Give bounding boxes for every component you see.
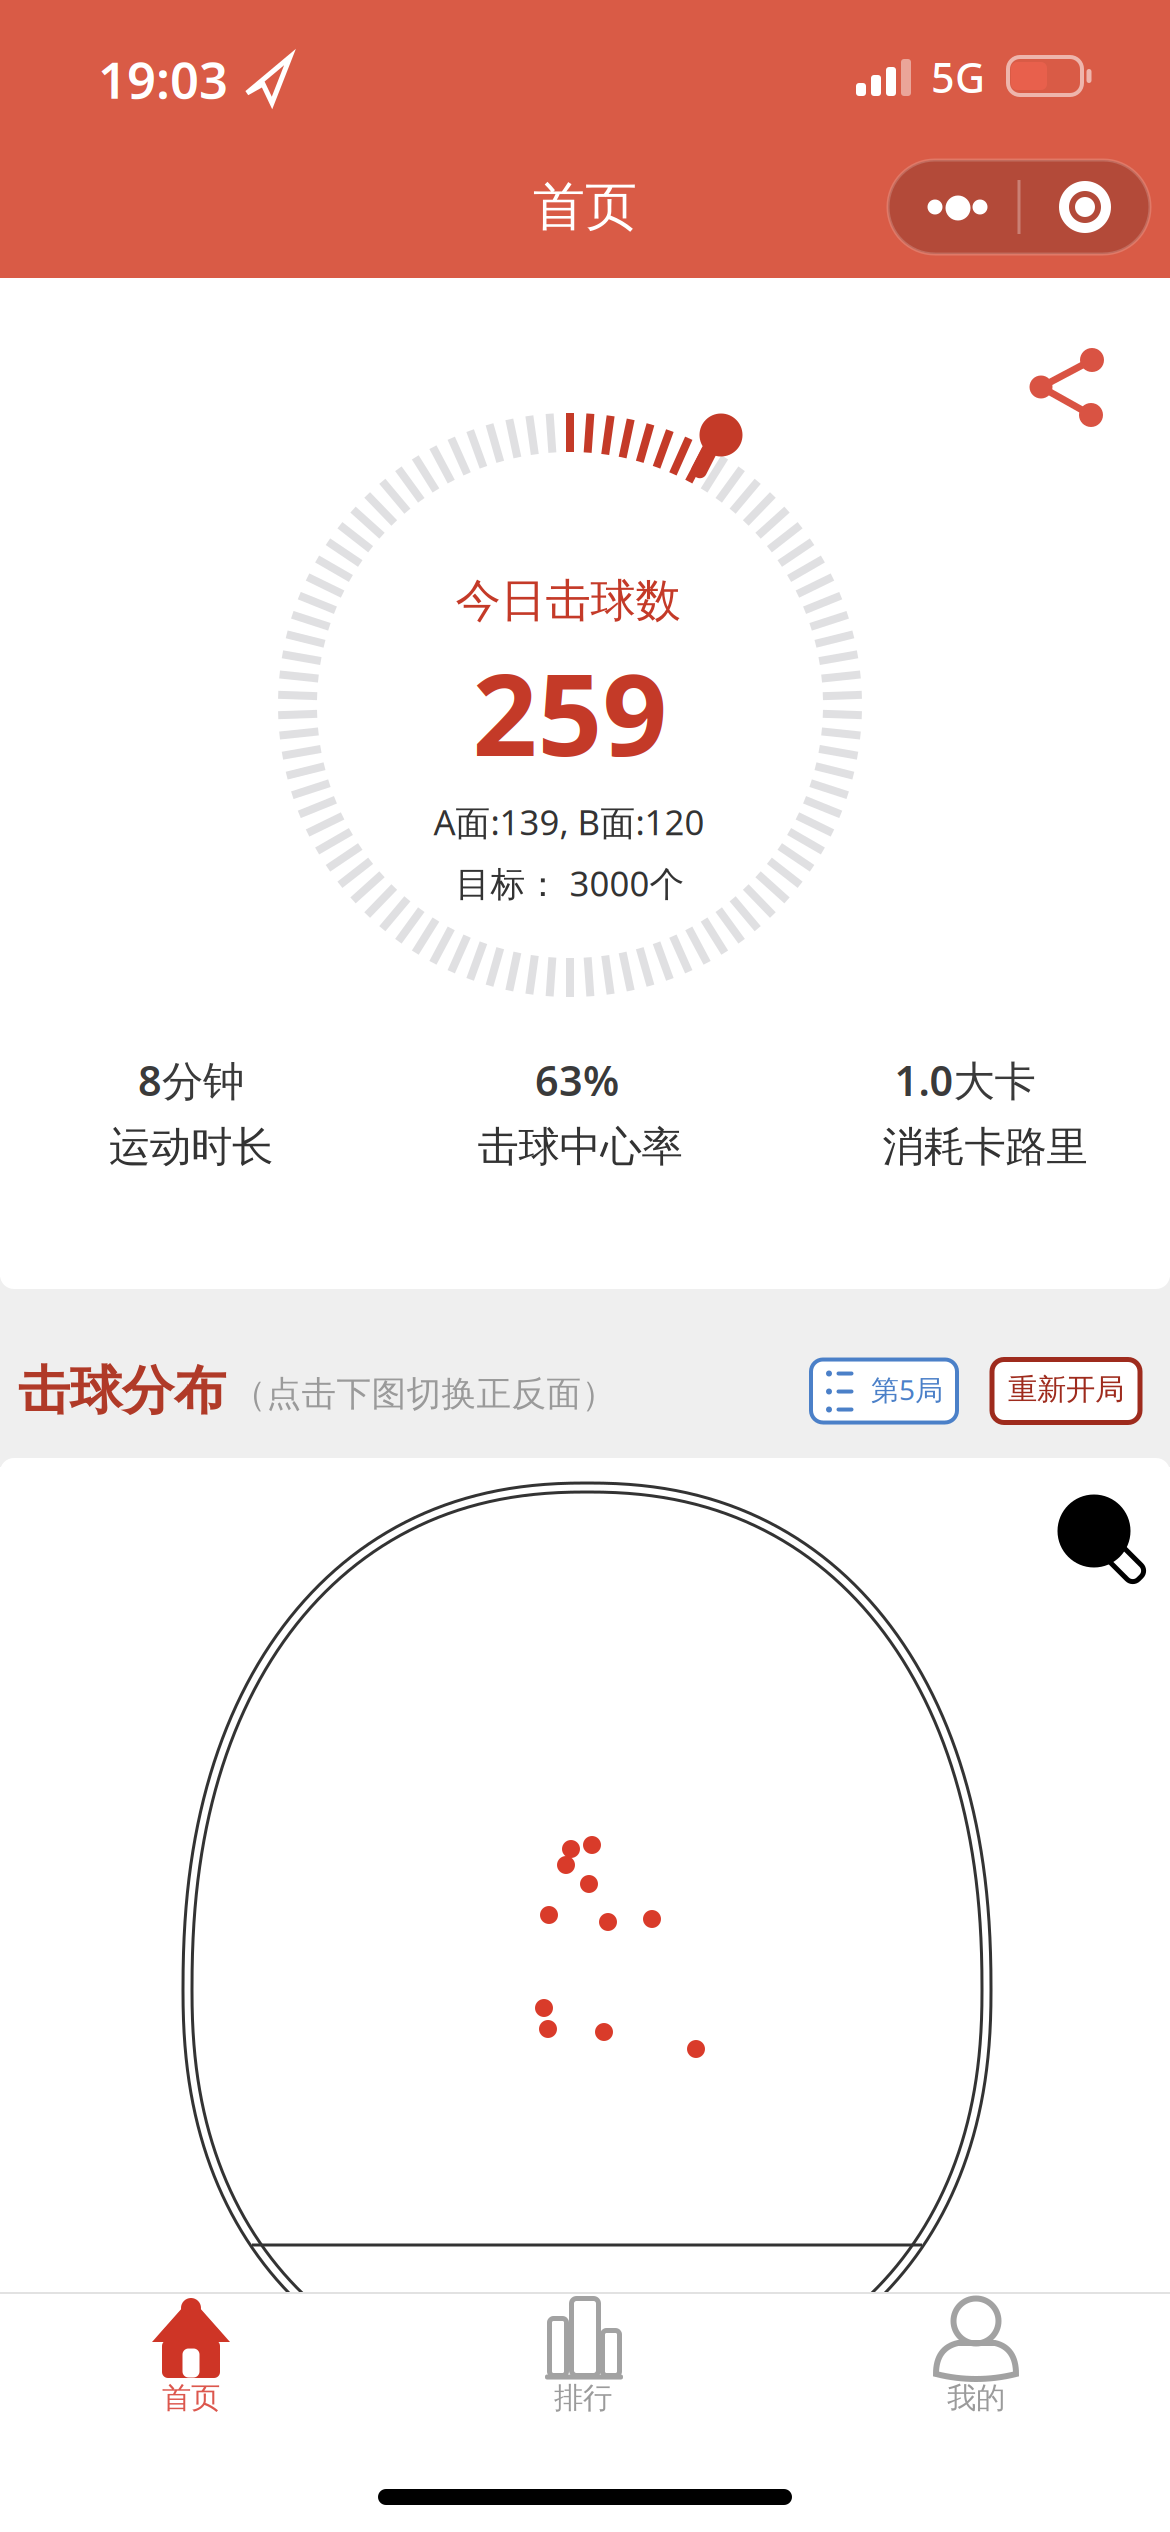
staticText: 19:03 <box>98 45 228 113</box>
button[interactable]: 排行 <box>390 2274 780 2438</box>
button[interactable]: 我的 <box>781 2274 1170 2438</box>
staticText: 目标： 3000个 <box>455 860 684 906</box>
staticText: 击球分布 <box>18 1359 226 1423</box>
button[interactable]: 第5局 <box>811 1359 957 1422</box>
staticText: 重新开局 <box>1008 1371 1124 1407</box>
staticText: （点击下图切换正反面） <box>231 1373 616 1415</box>
button[interactable]: 首页 <box>0 2274 386 2438</box>
staticText: 1.0大卡 <box>894 1053 1035 1107</box>
staticText: 首页 <box>162 2380 220 2416</box>
staticText: 今日击球数 <box>455 573 680 629</box>
staticText: 消耗卡路里 <box>882 1122 1087 1172</box>
staticText: 63% <box>535 1053 619 1107</box>
staticText: 排行 <box>554 2380 612 2416</box>
staticText: 运动时长 <box>109 1122 273 1172</box>
button[interactable]: 重新开局 <box>992 1359 1140 1422</box>
button[interactable]: 击球分布图（点击切换正反面） <box>0 1458 1170 2295</box>
button[interactable]: Share <box>1001 327 1131 447</box>
button[interactable]: More / Close mini program <box>888 160 1150 254</box>
staticText: 5G <box>931 50 985 104</box>
staticText: 我的 <box>947 2380 1005 2416</box>
staticText: 8分钟 <box>138 1053 244 1107</box>
staticText: 首页 <box>533 175 637 239</box>
staticText: 第5局 <box>871 1371 943 1408</box>
staticText: 击球中心率 <box>477 1122 682 1172</box>
staticText: 259 <box>472 637 667 787</box>
staticText: A面:139, B面:120 <box>433 799 704 845</box>
